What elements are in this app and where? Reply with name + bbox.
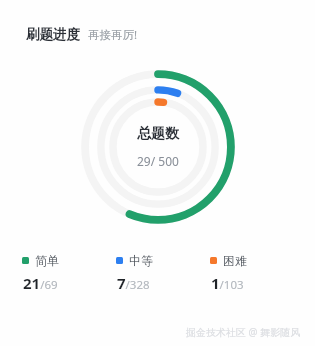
button[interactable]: 中等 <box>116 253 210 293</box>
staticText: 再接再厉! <box>88 27 138 43</box>
button[interactable]: 简单 <box>22 253 116 293</box>
staticText: 21/69 <box>23 273 58 293</box>
button[interactable]: 总题数 29 / 500 进度环 <box>65 54 251 240</box>
staticText: 29/ 500 <box>137 153 179 169</box>
button[interactable]: 困难 <box>210 253 297 293</box>
staticText: 困难 <box>223 253 247 268</box>
staticText: 简单 <box>35 253 59 268</box>
staticText: 1/103 <box>211 273 244 293</box>
staticText: 中等 <box>129 253 153 268</box>
staticText: 总题数 <box>137 125 179 143</box>
staticText: 刷题进度 <box>26 26 80 43</box>
staticText: 7/328 <box>117 273 150 293</box>
staticText: 掘金技术社区 @ 舞影随风 <box>186 325 301 339</box>
